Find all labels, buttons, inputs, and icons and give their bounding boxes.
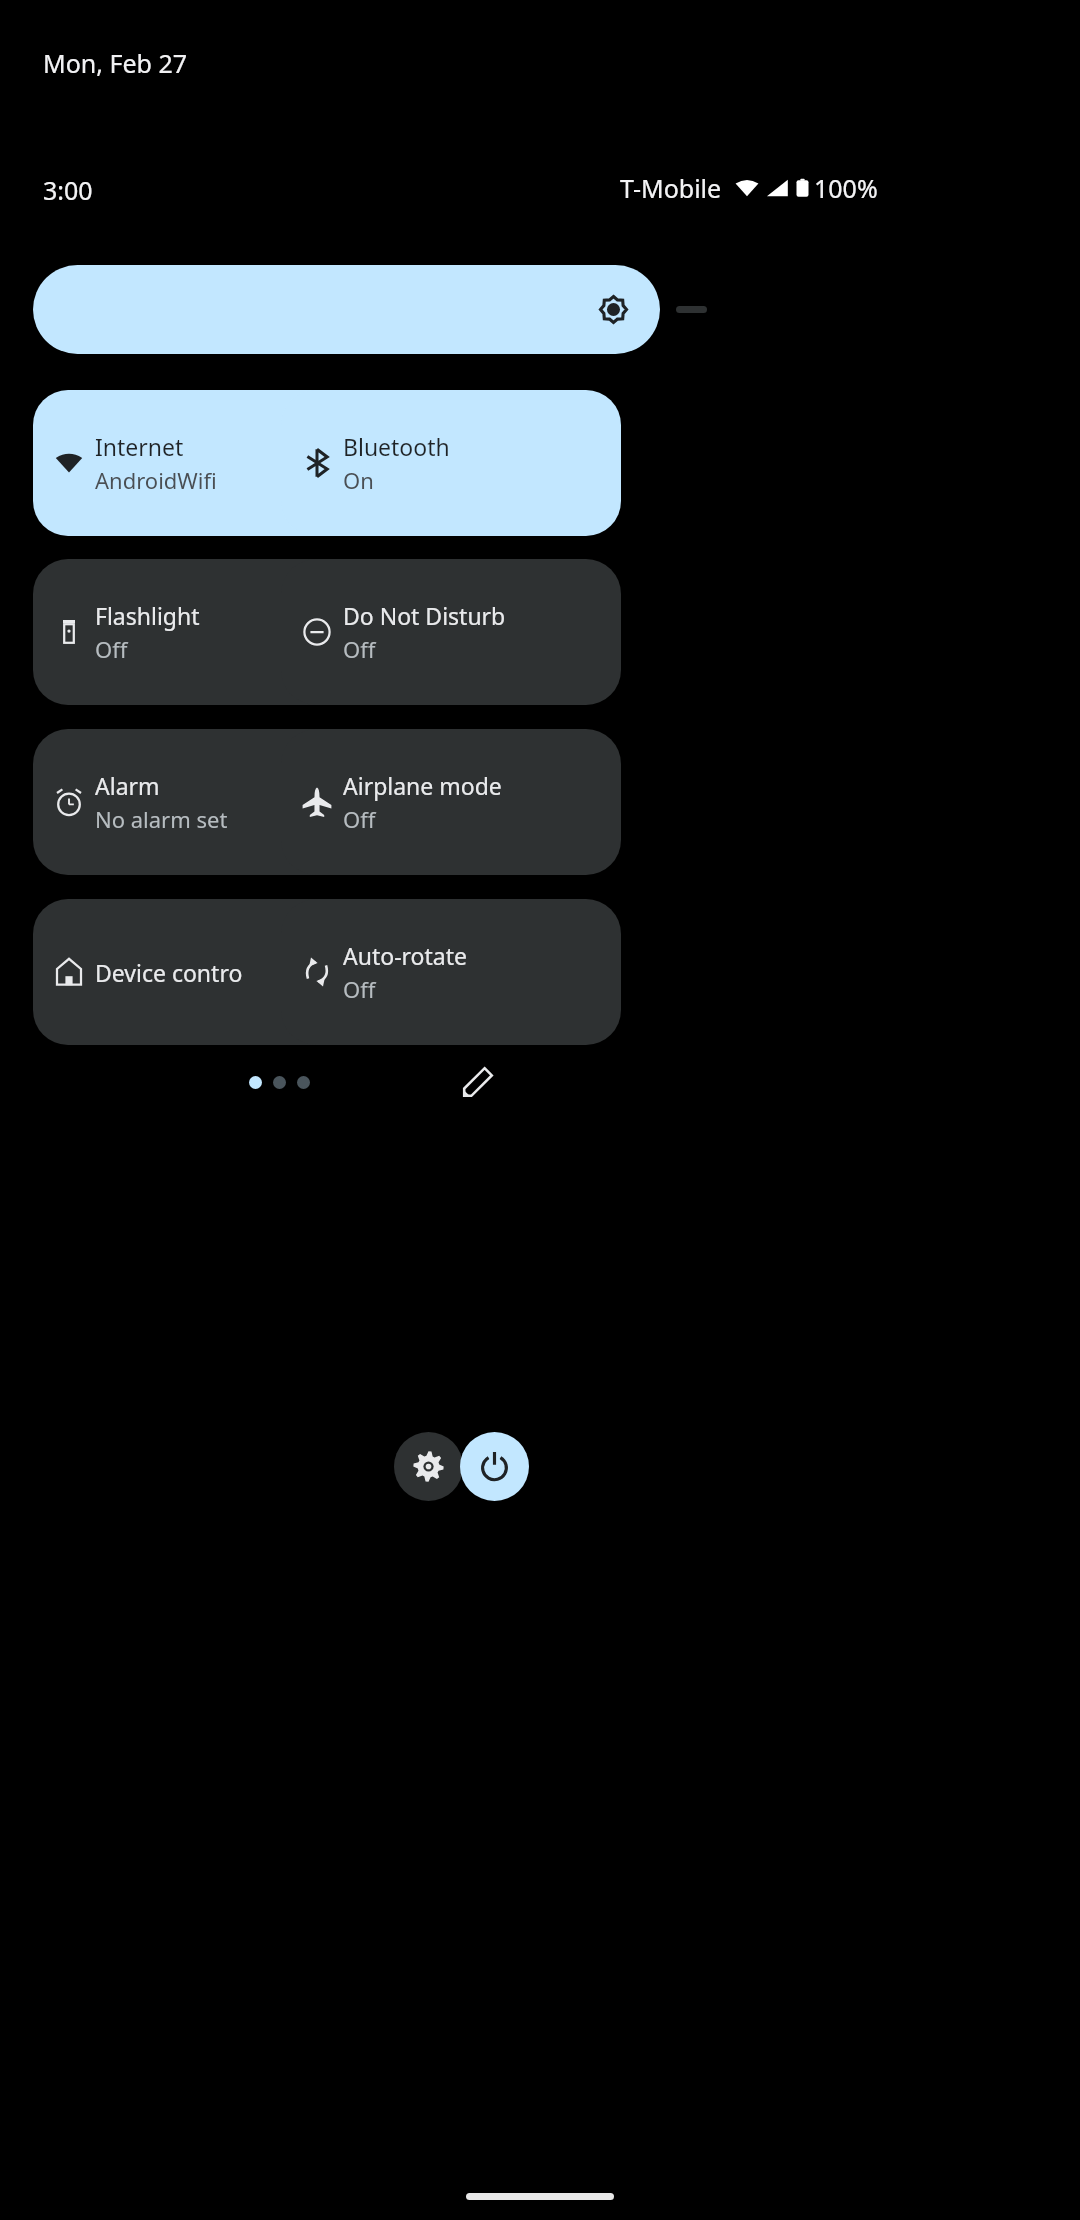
staticText: AndroidWifi [95,465,217,495]
staticText: Internet [95,431,184,462]
staticText: T-Mobile [620,171,722,205]
button[interactable]: Do Not Disturb [281,559,621,705]
staticText: Off [343,974,376,1004]
button[interactable]: Auto-rotate [281,899,621,1045]
button[interactable]: Power [460,1432,529,1501]
button[interactable]: Brightness [33,265,752,354]
button[interactable]: Internet [33,390,373,536]
staticText: Bluetooth [343,431,450,462]
button[interactable]: Flashlight [33,559,373,705]
button[interactable]: Edit tiles [456,1060,500,1104]
button[interactable]: Alarm [33,729,373,875]
button[interactable]: Airplane mode [281,729,621,875]
staticText: No alarm set [95,804,228,834]
staticText: Mon, Feb 27 [43,46,188,80]
button[interactable]: Device controls [33,899,373,1045]
staticText: Flashlight [95,600,200,631]
staticText: Auto-rotate [343,940,467,971]
button[interactable]: Bluetooth [281,390,621,536]
staticText: Alarm [95,770,160,801]
staticText: Off [95,634,128,664]
button[interactable]: Settings [394,1432,463,1501]
staticText: Off [343,804,376,834]
staticText: 100% [814,171,878,205]
staticText: Off [343,634,376,664]
staticText: Device contro [95,957,243,988]
staticText: Do Not Disturb [343,600,506,631]
staticText: Airplane mode [343,770,502,801]
staticText: 3:00 [43,173,93,207]
staticText: On [343,465,374,495]
